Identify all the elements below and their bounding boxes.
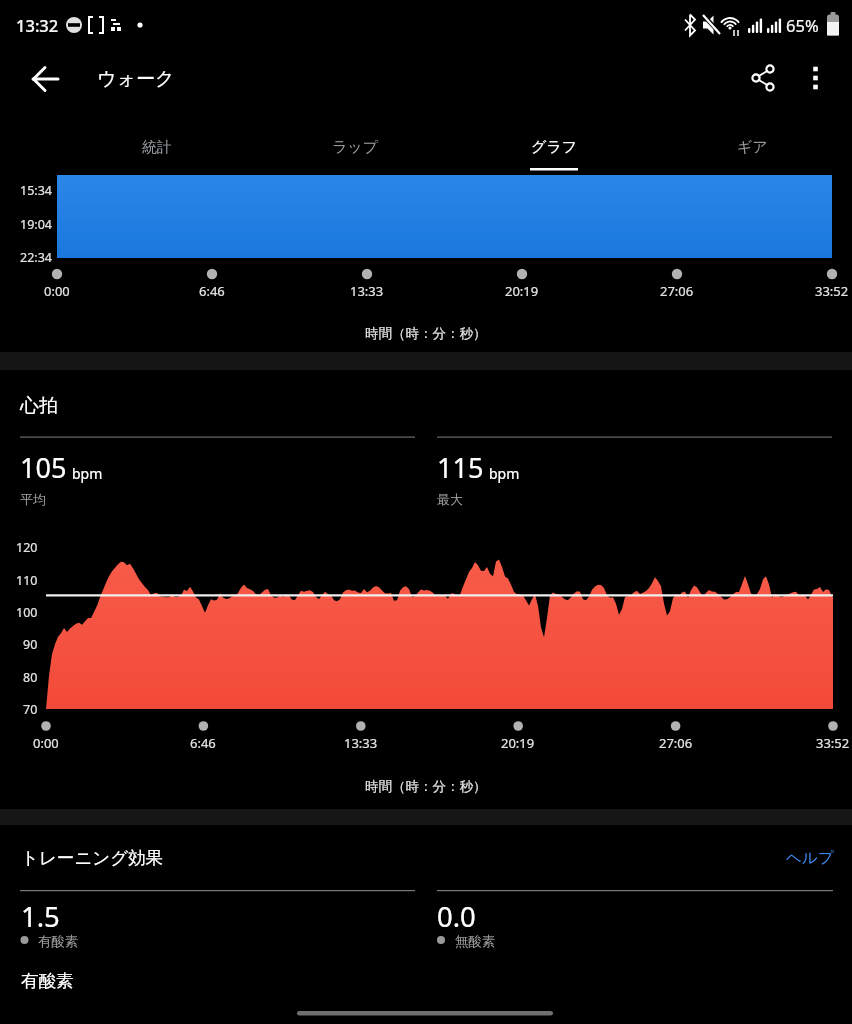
staticText: 6:46 — [199, 282, 225, 300]
staticText: 0:00 — [33, 734, 59, 752]
staticText: 27:06 — [659, 734, 693, 752]
staticText: 115 — [437, 449, 484, 486]
staticText: 平均 — [20, 491, 46, 507]
staticText: bpm — [72, 464, 103, 483]
button[interactable]: 統計 — [57, 124, 256, 170]
staticText: 最大 — [437, 491, 463, 507]
staticText: 22:34 — [20, 249, 52, 266]
staticText: 時間（時：分：秒） — [365, 778, 487, 795]
staticText: 15:34 — [20, 182, 52, 199]
staticText: トレーニング効果 — [21, 847, 164, 869]
staticText: 65% — [786, 14, 819, 36]
staticText: ラップ — [332, 138, 379, 157]
staticText: 110 — [16, 572, 38, 589]
staticText: 有酸素 — [38, 933, 79, 950]
staticText: 心拍 — [20, 394, 58, 418]
staticText: 70 — [23, 701, 38, 718]
staticText: 27:06 — [660, 282, 694, 300]
staticText: 0:00 — [44, 282, 70, 300]
staticText: 90 — [23, 636, 38, 653]
staticText: 19:04 — [20, 216, 52, 233]
staticText: 33:52 — [815, 282, 849, 300]
staticText: 統計 — [142, 138, 172, 157]
staticText: 無酸素 — [455, 933, 496, 950]
staticText: グラフ — [531, 138, 578, 157]
staticText: 13:33 — [344, 734, 378, 752]
button[interactable] — [21, 55, 69, 103]
staticText: ウォーク — [97, 67, 175, 91]
staticText: 120 — [16, 539, 38, 556]
staticText: 1.5 — [21, 898, 60, 935]
button[interactable]: ラップ — [256, 124, 455, 170]
button[interactable]: グラフ — [455, 124, 654, 170]
staticText: 有酸素 — [21, 970, 74, 992]
staticText: 13:32 — [16, 14, 59, 36]
staticText: 6:46 — [190, 734, 216, 752]
staticText: 105 — [20, 449, 67, 486]
staticText: 33:52 — [816, 734, 850, 752]
staticText: ヘルプ — [786, 848, 834, 868]
button[interactable]: ギア — [653, 124, 852, 170]
staticText: bpm — [489, 464, 520, 483]
button[interactable] — [791, 54, 839, 102]
staticText: 時間（時：分：秒） — [365, 325, 487, 342]
button[interactable] — [739, 54, 787, 102]
staticText: 20:19 — [501, 734, 535, 752]
staticText: 100 — [16, 604, 38, 621]
staticText: 20:19 — [505, 282, 539, 300]
staticText: ギア — [737, 138, 768, 157]
staticText: 13:33 — [350, 282, 384, 300]
staticText: 0.0 — [437, 898, 476, 935]
button[interactable]: ヘルプ — [786, 848, 834, 868]
staticText: 80 — [23, 669, 38, 686]
